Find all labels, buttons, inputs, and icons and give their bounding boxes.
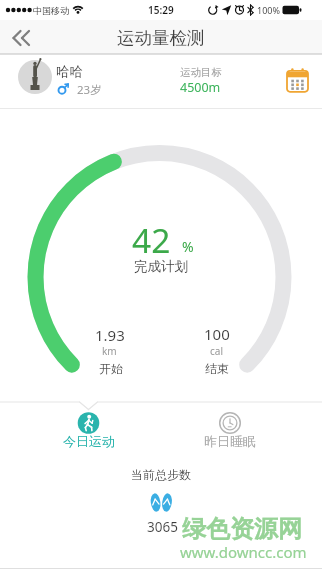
staticText: cal bbox=[210, 344, 223, 358]
staticText: 结束 bbox=[205, 361, 229, 376]
staticText: 哈哈 bbox=[56, 63, 83, 80]
staticText: % bbox=[182, 237, 194, 256]
staticText: 23岁 bbox=[77, 82, 102, 98]
staticText: 4500m bbox=[180, 79, 221, 96]
button[interactable] bbox=[190, 406, 270, 452]
staticText: 运动目标 bbox=[180, 66, 222, 79]
button[interactable] bbox=[0, 55, 180, 107]
staticText: 42 bbox=[132, 217, 171, 263]
staticText: 15:29 bbox=[148, 3, 174, 17]
staticText: 1.93 bbox=[95, 325, 125, 345]
button[interactable] bbox=[4, 24, 38, 50]
staticText: www.downcc.com bbox=[180, 542, 307, 562]
staticText: km bbox=[102, 344, 117, 358]
staticText: 今日运动 bbox=[63, 433, 115, 449]
staticText: 开始 bbox=[99, 361, 123, 376]
staticText: 当前总步数 bbox=[131, 467, 191, 482]
button[interactable] bbox=[283, 66, 313, 96]
staticText: 完成计划 bbox=[134, 258, 188, 275]
staticText: 100% bbox=[257, 4, 280, 16]
staticText: 昨日睡眠 bbox=[204, 433, 256, 449]
staticText: 绿色资源网 bbox=[182, 514, 302, 544]
staticText: 中国移动 bbox=[33, 5, 69, 16]
staticText: 100 bbox=[204, 324, 230, 344]
staticText: 运动量检测 bbox=[117, 27, 205, 49]
staticText: 3065 bbox=[147, 518, 178, 536]
button[interactable] bbox=[48, 406, 128, 452]
